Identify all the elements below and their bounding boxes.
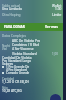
staticText: Cantidad xyxy=(2,77,14,81)
staticText: Violeta Standard xyxy=(12,52,37,56)
button[interactable]: Scroll down xyxy=(50,94,61,100)
staticText: 1,1.20 O CR EB,ZH xyxy=(2,80,29,84)
staticText: Ver mas xyxy=(45,25,58,29)
staticText: 1.00 xyxy=(55,7,62,11)
staticText: Nacht xyxy=(2,44,10,48)
staticText: Pro Standard Larga xyxy=(2,59,31,63)
staticText: Wallet xyxy=(52,4,62,8)
staticText: Sitio xyxy=(2,86,8,90)
staticText: 1 Pro Grande De xyxy=(6,65,30,69)
staticText: Candeiros / R Blvd xyxy=(12,43,40,47)
staticText: Saldo actual xyxy=(2,4,21,8)
staticText: Viol xyxy=(2,47,7,51)
staticText: Una Limitada xyxy=(2,7,22,11)
staticText: Comodo Grande xyxy=(6,71,30,75)
staticText: Cantidad De Violeta xyxy=(2,56,32,60)
button[interactable]: PARA DONAR xyxy=(0,23,66,31)
staticText: ABC De Violeta Pro xyxy=(12,39,41,43)
staticText: 4 Pro Standard xyxy=(6,68,27,72)
staticText: Otra Hoping xyxy=(2,13,21,17)
staticText: 1,00 xyxy=(52,52,58,56)
staticText: 4 Ser Viacense xyxy=(12,47,34,51)
staticText: Datos Complejos xyxy=(2,34,26,38)
staticText: 10,28 ATC,BG xyxy=(2,89,22,93)
staticText: PARA DONAR xyxy=(4,25,25,29)
staticText: Limite xyxy=(52,13,62,17)
staticText: Valores xyxy=(2,62,13,66)
